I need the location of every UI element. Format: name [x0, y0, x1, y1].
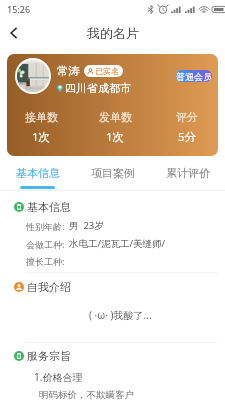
- button[interactable]: Back: [0, 20, 28, 46]
- staticText: 评分: [176, 110, 198, 124]
- staticText: 明码标价，不欺瞒客户: [39, 389, 134, 400]
- staticText: 男 23岁: [69, 219, 104, 232]
- staticText: 已实名: [95, 66, 119, 76]
- button[interactable]: 基本信息: [0, 164, 75, 190]
- button[interactable]: 累计评价: [150, 164, 225, 190]
- staticText: 发单数: [99, 110, 132, 124]
- button[interactable]: 项目案例: [75, 164, 150, 190]
- staticText: 接单数: [25, 110, 58, 124]
- staticText: 累计评价: [166, 166, 210, 180]
- staticText: 1次: [32, 129, 51, 145]
- staticText: 常涛: [57, 64, 80, 78]
- staticText: 项目案例: [91, 166, 135, 180]
- staticText: 15:26: [7, 3, 31, 15]
- staticText: 性别年龄:: [26, 220, 65, 232]
- staticText: 水电工/泥瓦工/美缝师/: [69, 237, 166, 250]
- staticText: 我的名片: [87, 25, 139, 41]
- staticText: 会做工种:: [26, 238, 65, 250]
- staticText: 1.价格合理: [34, 370, 83, 384]
- staticText: 普通会员: [176, 71, 212, 82]
- button[interactable]: 普通会员: [176, 70, 212, 82]
- staticText: 四川省成都市: [65, 81, 131, 95]
- button[interactable]: 常涛: [7, 54, 218, 156]
- staticText: 擅长工种:: [26, 255, 65, 267]
- staticText: ( ·ω· )我酸了...: [89, 308, 152, 322]
- staticText: 1次: [106, 129, 125, 145]
- staticText: 基本信息: [16, 166, 60, 180]
- staticText: 基本信息: [27, 200, 71, 214]
- staticText: 服务宗旨: [27, 349, 71, 363]
- staticText: 自我介绍: [27, 280, 71, 294]
- staticText: 5分: [178, 129, 197, 145]
